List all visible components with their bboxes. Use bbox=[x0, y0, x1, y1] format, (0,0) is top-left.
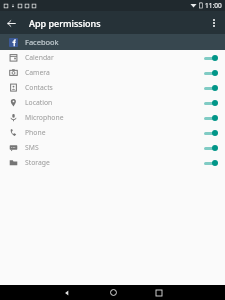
button[interactable]: Toggle permission bbox=[202, 112, 218, 124]
button[interactable]: More options bbox=[203, 12, 225, 34]
staticText: Facebook bbox=[25, 37, 59, 47]
button[interactable]: Toggle permission bbox=[202, 142, 218, 154]
staticText: Microphone bbox=[25, 113, 202, 122]
button[interactable]: Toggle permission bbox=[202, 67, 218, 79]
button[interactable]: Contacts bbox=[0, 80, 225, 95]
button[interactable]: Phone bbox=[0, 125, 225, 140]
button[interactable]: Microphone bbox=[0, 110, 225, 125]
button[interactable]: Camera bbox=[0, 65, 225, 80]
button[interactable]: Toggle permission bbox=[202, 97, 218, 109]
staticText: Camera bbox=[25, 68, 202, 77]
button[interactable]: Toggle permission bbox=[202, 82, 218, 94]
button[interactable]: Toggle permission bbox=[202, 127, 218, 139]
button[interactable]: Facebook bbox=[0, 34, 225, 50]
button[interactable]: Toggle permission bbox=[202, 157, 218, 169]
button[interactable]: Back bbox=[0, 12, 22, 34]
button[interactable]: Home bbox=[98, 285, 128, 300]
staticText: App permissions bbox=[29, 17, 101, 29]
button[interactable]: Location bbox=[0, 95, 225, 110]
button[interactable]: Recent apps bbox=[144, 285, 174, 300]
button[interactable]: SMS bbox=[0, 140, 225, 155]
staticText: Location bbox=[25, 98, 202, 107]
button[interactable]: Calendar bbox=[0, 50, 225, 65]
button[interactable]: Back bbox=[52, 285, 82, 300]
staticText: Calendar bbox=[25, 53, 202, 62]
staticText: 11:00 bbox=[205, 1, 222, 10]
button[interactable]: Toggle permission bbox=[202, 52, 218, 64]
staticText: SMS bbox=[25, 143, 202, 152]
button[interactable]: Storage bbox=[0, 155, 225, 170]
staticText: Contacts bbox=[25, 83, 202, 92]
staticText: Storage bbox=[25, 158, 202, 167]
staticText: Phone bbox=[25, 128, 202, 137]
